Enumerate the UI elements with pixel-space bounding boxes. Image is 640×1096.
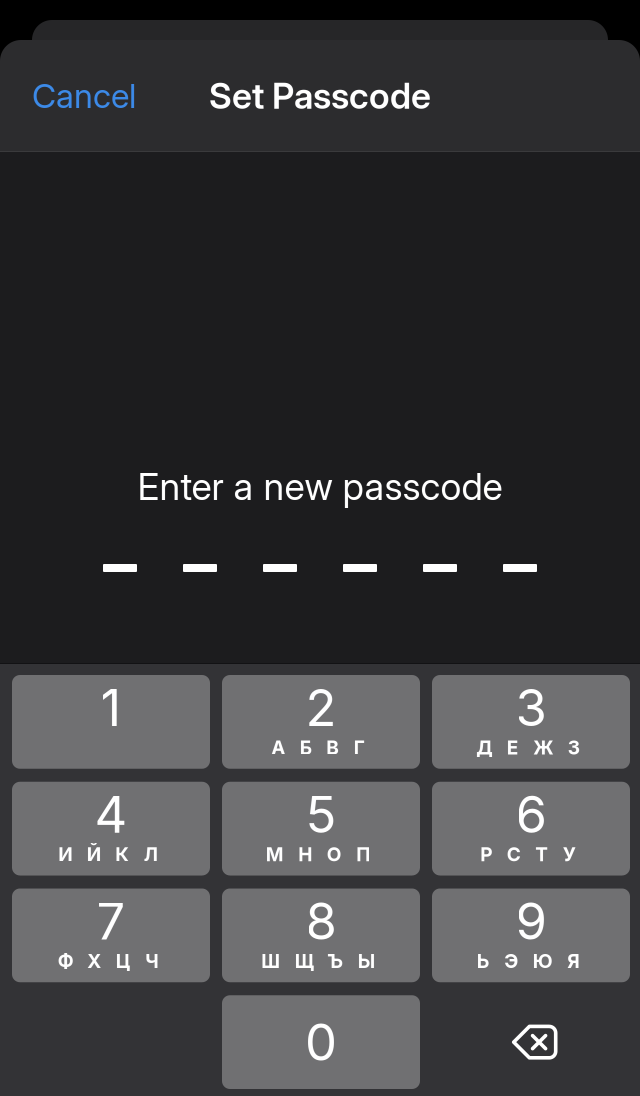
staticText: Set Passcode	[209, 75, 431, 117]
button[interactable]: 7	[12, 888, 210, 982]
staticText: Enter a new passcode	[137, 464, 502, 509]
staticText: Cancel	[32, 76, 136, 116]
staticText: 9	[515, 890, 546, 952]
button[interactable]: 1	[12, 675, 210, 769]
staticText: 6	[515, 784, 546, 845]
staticText: 1	[100, 677, 121, 738]
staticText: 0	[305, 1011, 337, 1073]
button[interactable]: 6	[432, 782, 630, 876]
staticText: РСТУ	[480, 843, 576, 866]
button[interactable]: 3	[432, 675, 630, 769]
staticText: 4	[94, 784, 127, 845]
button[interactable]: 9	[432, 888, 630, 982]
staticText: МНОП	[266, 843, 370, 866]
button[interactable]: Cancel	[0, 60, 156, 132]
button[interactable]: 2	[222, 675, 420, 769]
staticText: ДЕЖЗ	[476, 736, 580, 759]
button[interactable]: 8	[222, 888, 420, 982]
staticText: ФХЦЧ	[58, 949, 158, 972]
staticText: 5	[305, 784, 336, 845]
staticText: ШЩЪЫ	[261, 949, 375, 972]
staticText: АБВГ	[271, 736, 365, 759]
staticText: 3	[515, 677, 546, 738]
button[interactable]: 0	[222, 995, 420, 1089]
button[interactable]: 5	[222, 782, 420, 876]
button[interactable]: 4	[12, 782, 210, 876]
staticText: 7	[96, 890, 125, 952]
staticText: 2	[305, 677, 336, 738]
staticText: 8	[305, 890, 336, 952]
staticText: ЬЭЮЯ	[477, 949, 579, 972]
button[interactable]: Delete	[432, 995, 630, 1089]
staticText: ИЙКЛ	[58, 843, 158, 866]
